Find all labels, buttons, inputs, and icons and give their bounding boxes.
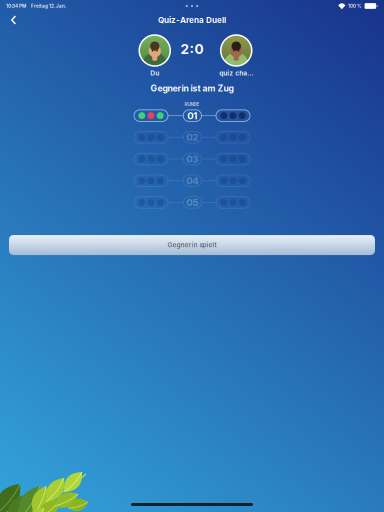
button[interactable]: Gegnerin spielt <box>9 235 375 255</box>
button[interactable]: Back <box>0 12 27 28</box>
staticText: Freitag 12. Jan. <box>31 3 66 9</box>
staticText: Gegnerin spielt <box>167 241 216 249</box>
staticText: 03 <box>186 153 198 165</box>
staticText: 04 <box>186 175 198 186</box>
staticText: Gegnerin ist am Zug <box>150 83 233 94</box>
staticText: Du <box>150 69 159 77</box>
staticText: 100 % <box>348 3 362 9</box>
staticText: Quiz-Arena Duell <box>158 15 226 25</box>
staticText: 01 <box>187 110 197 121</box>
staticText: RUNDE <box>184 102 199 107</box>
staticText: 10:34 PM <box>6 3 26 9</box>
staticText: 02 <box>186 131 198 143</box>
staticText: quiz cha… <box>219 69 253 77</box>
staticText: 05 <box>186 197 198 208</box>
staticText: 2:0 <box>180 41 203 57</box>
